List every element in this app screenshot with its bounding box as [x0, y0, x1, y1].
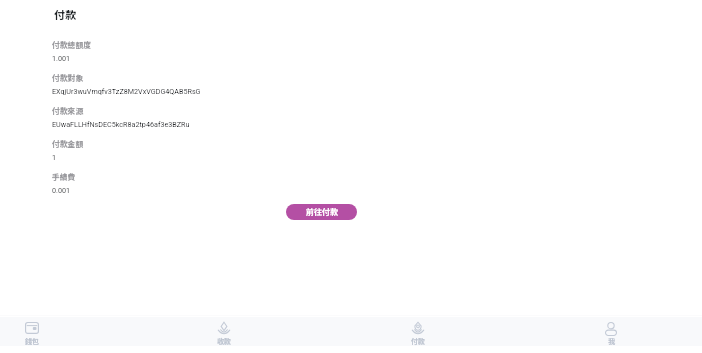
staticText: 0.001 [52, 186, 71, 194]
staticText: 手續費 [52, 171, 76, 182]
button[interactable]: Pay [388, 317, 448, 345]
staticText: 付款金額 [52, 138, 84, 149]
staticText: 我 [608, 336, 615, 346]
staticText: 收款 [217, 336, 231, 346]
staticText: 1 [52, 153, 57, 161]
button[interactable]: Receive money [194, 317, 254, 345]
staticText: 付款來源 [52, 105, 84, 116]
staticText: 錢包 [25, 336, 39, 346]
button[interactable]: 前往付款 [286, 204, 357, 220]
button[interactable]: Profile [581, 317, 641, 345]
staticText: 付款 [54, 6, 76, 22]
button[interactable]: Wallet [2, 317, 62, 345]
staticText: 1.001 [52, 54, 71, 62]
staticText: 付款總額度 [52, 39, 91, 50]
staticText: EUwaFLLHfNsDEC5kcR8a2tp46af3e3BZRu [52, 120, 190, 128]
staticText: 付款對象 [52, 72, 84, 83]
staticText: EXqjUr3wuVmqfv3TzZ8M2VxVGDG4QAB5RsG [52, 87, 201, 95]
staticText: 前往付款 [306, 206, 338, 218]
staticText: 付款 [411, 336, 425, 346]
